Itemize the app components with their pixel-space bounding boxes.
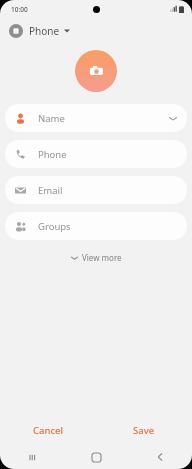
staticText: View more [82, 252, 122, 263]
staticText: Phone [38, 148, 67, 161]
staticText: Email [38, 184, 63, 197]
staticText: Groups [38, 220, 71, 233]
button[interactable]: Email [5, 176, 187, 204]
button[interactable]: Save [96, 415, 192, 445]
button[interactable]: Home [64, 445, 128, 469]
staticText: Cancel [33, 424, 64, 437]
button[interactable]: Groups [5, 212, 187, 240]
button[interactable]: Recent apps [0, 445, 64, 469]
button[interactable]: Add contact photo [75, 50, 117, 92]
button[interactable]: Name [5, 104, 187, 132]
staticText: Phone [29, 24, 60, 38]
button[interactable]: Back [128, 445, 192, 469]
button[interactable]: View more [63, 249, 130, 266]
button[interactable]: Phone [5, 140, 187, 168]
staticText: 10:00 [11, 5, 28, 14]
staticText: Name [38, 112, 65, 125]
button[interactable]: Phone [0, 18, 192, 44]
staticText: Save [133, 424, 155, 437]
button[interactable]: Cancel [0, 415, 96, 445]
